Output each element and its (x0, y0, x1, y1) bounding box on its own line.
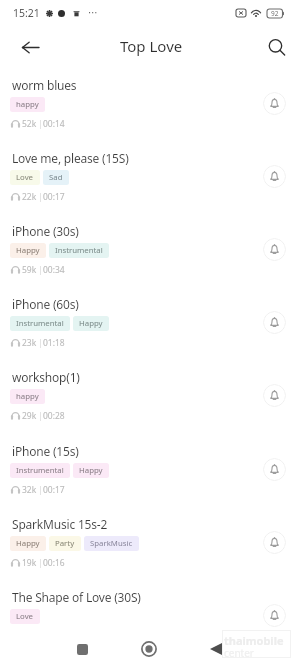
button[interactable]: Notify (263, 458, 286, 481)
button[interactable]: The Shape of Love (30S) (0, 589, 300, 662)
staticText: 00:28 (43, 410, 65, 422)
button[interactable]: Notify (263, 384, 286, 407)
button[interactable]: iPhone (15s) (0, 443, 300, 516)
staticText: SparkMusic 15s-2 (12, 516, 252, 532)
staticText: ⋯ (88, 7, 98, 19)
staticText: 01:18 (43, 337, 65, 349)
button[interactable]: Recents (66, 633, 98, 665)
staticText: Instrumental (16, 318, 64, 329)
staticText: workshop(1) (12, 369, 252, 385)
staticText: Happy (16, 245, 40, 256)
staticText: worm blues (12, 77, 252, 93)
staticText: The Shape of Love (30S) (12, 589, 252, 605)
staticText: 00:17 (43, 191, 65, 203)
staticText: Happy (79, 318, 103, 329)
staticText: Top Love (120, 36, 183, 56)
button[interactable]: Notify (263, 604, 286, 627)
button[interactable]: worm blues (0, 77, 300, 150)
button[interactable]: iPhone (30s) (0, 223, 300, 296)
button[interactable]: Notify (263, 531, 286, 554)
button[interactable]: Back (200, 633, 232, 665)
staticText: happy (16, 99, 39, 110)
staticText: iPhone (60s) (12, 296, 252, 312)
staticText: 52k (22, 118, 37, 130)
staticText: Party (55, 538, 75, 549)
staticText: 59k (22, 264, 37, 276)
staticText: Love (16, 172, 34, 183)
staticText: Instrumental (16, 465, 64, 476)
button[interactable]: SparkMusic 15s-2 (0, 516, 300, 589)
button[interactable]: Home (133, 633, 165, 665)
button[interactable]: Notify (263, 165, 286, 188)
staticText: 23k (22, 337, 37, 349)
staticText: thaimobile (224, 633, 284, 648)
staticText: 00:34 (43, 264, 65, 276)
staticText: Sad (49, 172, 63, 183)
staticText: Happy (79, 465, 103, 476)
staticText: center (224, 646, 254, 659)
staticText: iPhone (30s) (12, 223, 252, 239)
button[interactable]: iPhone (60s) (0, 296, 300, 369)
staticText: iPhone (15s) (12, 443, 252, 459)
button[interactable]: workshop(1) (0, 369, 300, 442)
staticText: 29k (22, 410, 37, 422)
staticText: 92 (271, 9, 279, 18)
button[interactable]: Notify (263, 238, 286, 261)
staticText: 22k (22, 191, 37, 203)
button[interactable]: Back (18, 35, 42, 59)
staticText: Instrumental (55, 245, 103, 256)
button[interactable]: Search (264, 35, 288, 59)
staticText: Love me, please (15S) (12, 150, 252, 166)
button[interactable]: Notify (263, 92, 286, 115)
staticText: 00:16 (43, 557, 65, 569)
staticText: Love (16, 611, 34, 622)
button[interactable]: Love me, please (15S) (0, 150, 300, 223)
staticText: 19k (22, 557, 37, 569)
staticText: 32k (22, 484, 37, 496)
staticText: SparkMusic (90, 538, 133, 549)
staticText: Happy (16, 538, 40, 549)
staticText: 15:21 (13, 6, 40, 20)
button[interactable]: Notify (263, 311, 286, 334)
staticText: 00:14 (43, 118, 65, 130)
staticText: happy (16, 391, 39, 402)
staticText: 00:17 (43, 484, 65, 496)
